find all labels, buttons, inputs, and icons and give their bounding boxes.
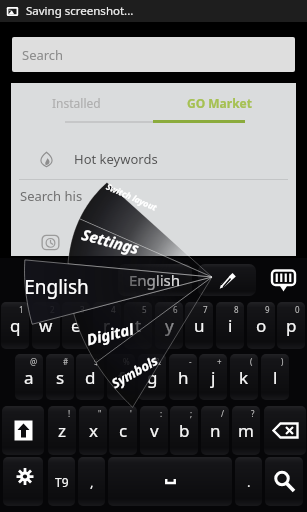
staticText: & — [155, 356, 161, 367]
button[interactable]: a — [15, 354, 43, 400]
button[interactable]: y — [155, 302, 183, 349]
staticText: l — [273, 366, 278, 389]
staticText: English — [24, 274, 89, 300]
button[interactable]: English — [0, 274, 116, 300]
button[interactable]: o — [247, 302, 275, 349]
button[interactable]: Hot keywords — [11, 139, 296, 179]
staticText: ! — [68, 408, 71, 419]
button[interactable] — [198, 264, 256, 296]
button[interactable]: l — [261, 354, 289, 400]
button[interactable] — [265, 457, 303, 506]
staticText: ) — [281, 356, 284, 367]
staticText: w — [39, 314, 53, 337]
button[interactable]: i — [216, 302, 244, 349]
staticText: Switch layout — [104, 180, 159, 214]
staticText: Symbols — [108, 351, 161, 392]
staticText: r — [103, 314, 111, 337]
button[interactable]: f — [107, 354, 135, 400]
staticText: y — [165, 314, 174, 337]
staticText: t — [135, 314, 142, 337]
button[interactable]: Symbols — [75, 331, 192, 413]
staticText: + — [217, 356, 222, 367]
button[interactable] — [3, 457, 43, 506]
button[interactable]: k — [230, 354, 258, 400]
button[interactable]: Installed — [11, 83, 142, 123]
button[interactable]: w — [32, 302, 60, 349]
button[interactable]: u — [185, 302, 213, 349]
staticText: f — [118, 366, 124, 389]
button[interactable]: Settings — [49, 213, 171, 269]
button[interactable]: v — [140, 406, 168, 455]
button[interactable]: Search — [12, 37, 295, 72]
staticText: p — [286, 314, 297, 337]
button[interactable]: English — [118, 264, 192, 296]
button[interactable]: , — [78, 457, 105, 506]
staticText: Saving screenshot... — [26, 3, 134, 19]
staticText: % — [123, 356, 130, 367]
button[interactable]: t — [124, 302, 152, 349]
staticText: 6 — [173, 304, 178, 315]
staticText: u — [194, 314, 205, 337]
staticText: o — [256, 314, 267, 337]
staticText: v — [150, 419, 159, 442]
button[interactable]: b — [170, 406, 198, 455]
staticText: # — [63, 356, 69, 367]
staticText: / — [221, 408, 224, 419]
staticText: Hot keywords — [74, 150, 158, 168]
staticText: h — [178, 366, 189, 389]
staticText: " — [98, 408, 102, 419]
button[interactable] — [2, 406, 44, 455]
button[interactable] — [108, 457, 232, 506]
staticText: z — [58, 419, 66, 442]
button[interactable]: . — [235, 457, 262, 506]
button[interactable]: z — [48, 406, 76, 455]
button[interactable]: j — [199, 354, 227, 400]
button[interactable] — [264, 406, 306, 455]
staticText: m — [238, 419, 254, 442]
button[interactable]: h — [169, 354, 197, 400]
staticText: j — [211, 366, 216, 389]
button[interactable]: T9 — [48, 457, 75, 506]
staticText: Search his — [20, 187, 83, 205]
button[interactable]: m — [232, 406, 260, 455]
button[interactable]: Switch layout — [71, 161, 191, 233]
staticText: : — [160, 408, 163, 419]
staticText: 4 — [111, 304, 116, 315]
staticText: g — [147, 366, 158, 389]
staticText: Installed — [52, 95, 101, 111]
staticText: x — [89, 419, 98, 442]
staticText: b — [179, 419, 190, 442]
staticText: ; — [190, 408, 193, 419]
staticText: ( — [250, 356, 253, 367]
button[interactable]: e — [62, 302, 90, 349]
staticText: e — [71, 314, 81, 337]
button[interactable]: r — [93, 302, 121, 349]
staticText: Digital — [84, 318, 136, 349]
button[interactable]: d — [76, 354, 104, 400]
staticText: 5 — [142, 304, 147, 315]
button[interactable]: GO Market — [142, 83, 296, 123]
staticText: i — [228, 314, 233, 337]
button[interactable]: n — [201, 406, 229, 455]
button[interactable]: q — [1, 302, 29, 349]
staticText: 9 — [265, 304, 270, 315]
button[interactable]: g — [138, 354, 166, 400]
button[interactable]: s — [46, 354, 74, 400]
button[interactable]: Switch keyboard — [268, 265, 298, 295]
button[interactable]: x — [79, 406, 107, 455]
staticText: Search — [22, 46, 64, 64]
button[interactable]: p — [277, 302, 305, 349]
staticText: s — [56, 366, 65, 389]
staticText: ? — [251, 408, 255, 419]
staticText: ' — [130, 408, 132, 419]
staticText: - — [189, 356, 192, 367]
staticText: q — [10, 314, 21, 337]
staticText: , — [90, 473, 94, 491]
staticText: n — [210, 419, 221, 442]
staticText: GO Market — [187, 95, 252, 111]
staticText: a — [24, 366, 34, 389]
staticText: English — [129, 270, 181, 290]
staticText: 2 — [50, 304, 55, 315]
button[interactable]: c — [109, 406, 137, 455]
button[interactable]: Digital — [49, 307, 171, 361]
